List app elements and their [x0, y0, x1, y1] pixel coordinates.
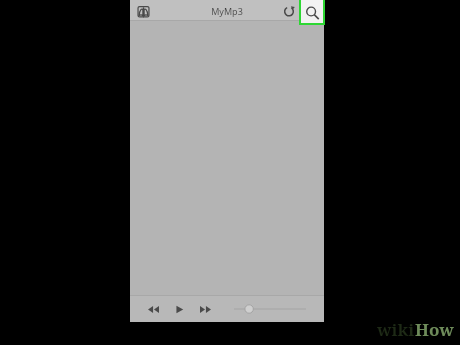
staticText: How — [415, 318, 454, 341]
button[interactable]: Play — [170, 300, 188, 318]
button[interactable]: Search — [301, 0, 323, 23]
button[interactable]: Volume — [234, 301, 306, 317]
button[interactable]: Bookmarks — [133, 1, 153, 21]
staticText: MyMp3 — [211, 5, 243, 17]
staticText: wiki — [377, 318, 415, 341]
button[interactable]: Refresh — [280, 2, 298, 20]
button[interactable]: Rewind — [144, 300, 162, 318]
button[interactable]: Fast forward — [196, 300, 214, 318]
